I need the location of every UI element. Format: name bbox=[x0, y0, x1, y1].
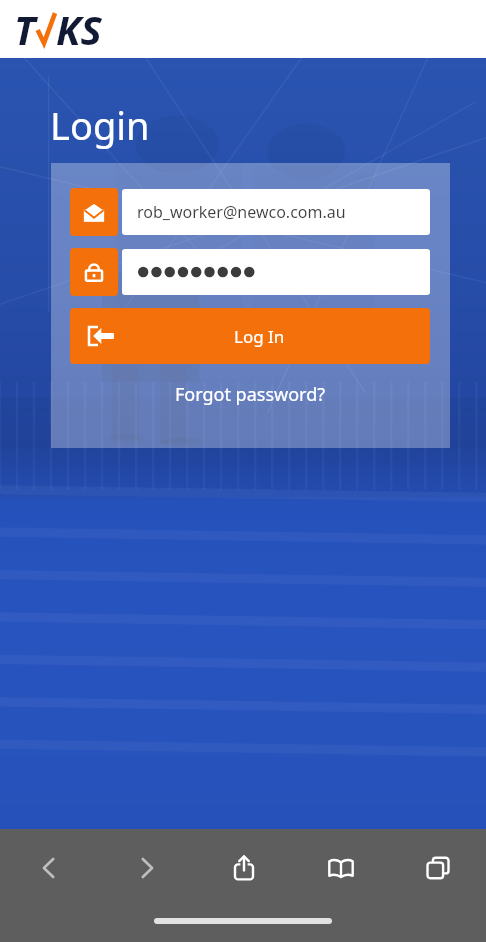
button[interactable]: Forgot password? bbox=[70, 374, 430, 414]
other: Password bbox=[70, 248, 118, 296]
button[interactable]: Share bbox=[195, 829, 292, 907]
button[interactable]: Forward bbox=[98, 829, 195, 907]
button[interactable]: Log In bbox=[70, 308, 430, 364]
staticText: Login bbox=[50, 99, 150, 151]
staticText: T bbox=[14, 2, 36, 56]
staticText: Log In bbox=[234, 325, 285, 348]
other: Email bbox=[70, 188, 118, 236]
button[interactable]: Bookmarks bbox=[292, 829, 389, 907]
staticText: rob_worker@newco.com.au bbox=[137, 201, 346, 223]
button[interactable]: Back bbox=[0, 829, 98, 907]
staticText: KS bbox=[56, 2, 102, 56]
button[interactable]: Email bbox=[70, 188, 430, 236]
button[interactable]: Password bbox=[70, 248, 430, 296]
button[interactable]: Tabs bbox=[389, 829, 486, 907]
staticText: Forgot password? bbox=[175, 382, 326, 407]
